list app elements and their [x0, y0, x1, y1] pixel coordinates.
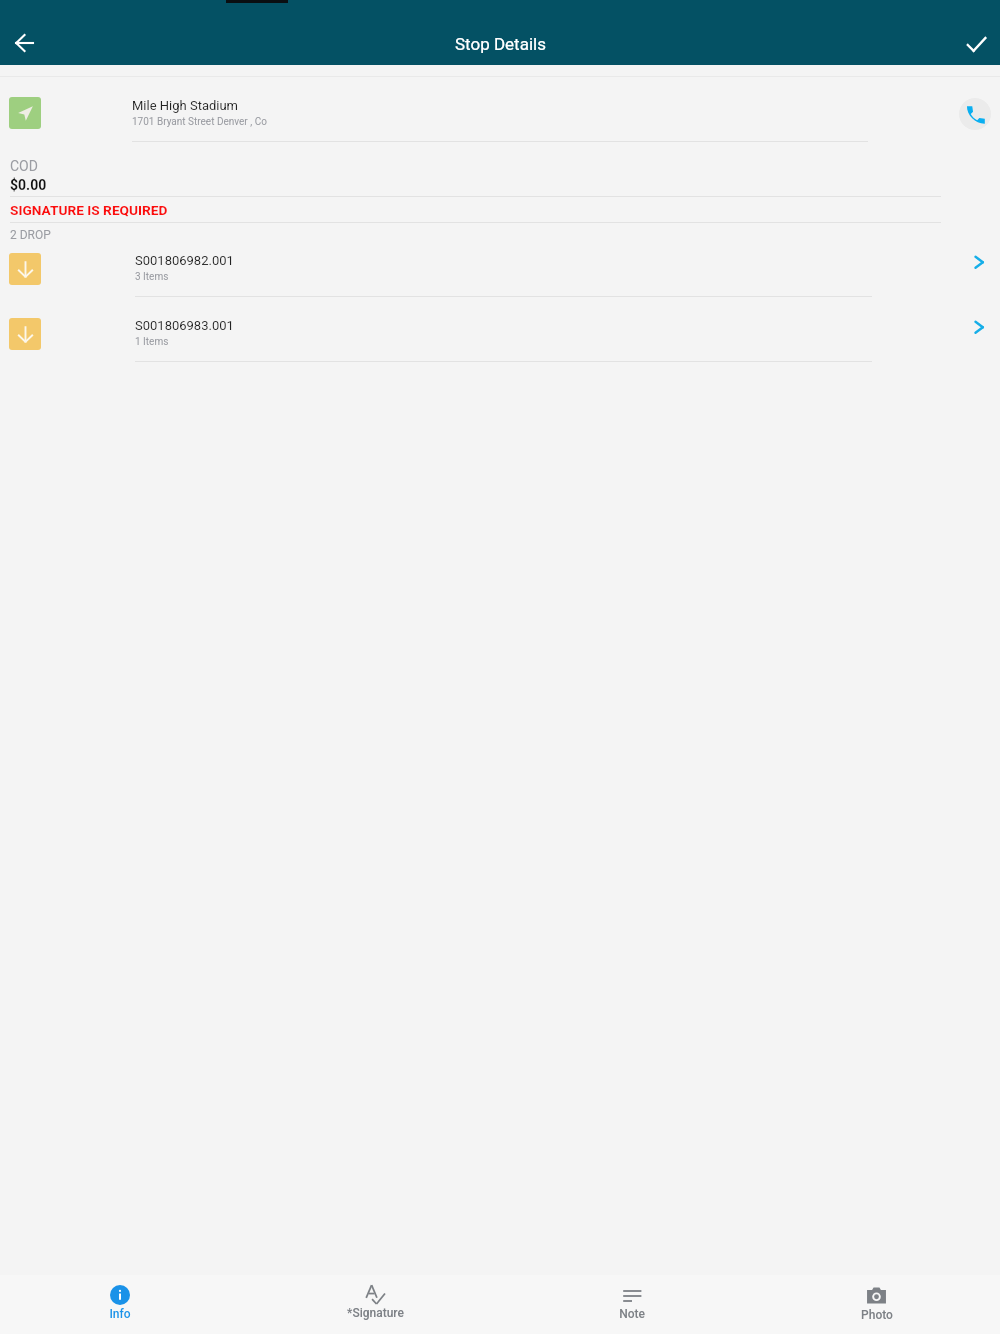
staticText: COD: [10, 158, 38, 174]
staticText: Info: [109, 1307, 131, 1321]
staticText: Note: [619, 1307, 645, 1321]
staticText: 3 Items: [135, 271, 169, 283]
staticText: *Signature: [347, 1306, 404, 1320]
button[interactable]: Done: [952, 21, 1000, 65]
staticText: Mile High Stadium: [132, 98, 239, 113]
staticText: Stop Details: [455, 34, 546, 54]
button[interactable]: S001806983.001: [0, 318, 1000, 383]
staticText: S001806982.001: [135, 253, 234, 268]
staticText: 2 DROP: [10, 228, 51, 242]
staticText: S001806983.001: [135, 318, 234, 333]
staticText: 1 Items: [135, 336, 169, 348]
button[interactable]: Info: [0, 1275, 240, 1334]
staticText: $0.00: [10, 177, 47, 193]
button[interactable]: *Signature: [250, 1275, 501, 1334]
staticText: SIGNATURE IS REQUIRED: [10, 202, 168, 218]
staticText: Photo: [861, 1308, 893, 1322]
button[interactable]: Photo: [758, 1275, 995, 1334]
button[interactable]: Call: [959, 98, 991, 130]
button[interactable]: Note: [501, 1275, 763, 1334]
button[interactable]: Back: [0, 21, 48, 65]
button[interactable]: S001806982.001: [0, 253, 1000, 318]
staticText: 1701 Bryant Street Denver , Co: [132, 116, 267, 128]
button[interactable]: Navigate: [9, 97, 41, 129]
